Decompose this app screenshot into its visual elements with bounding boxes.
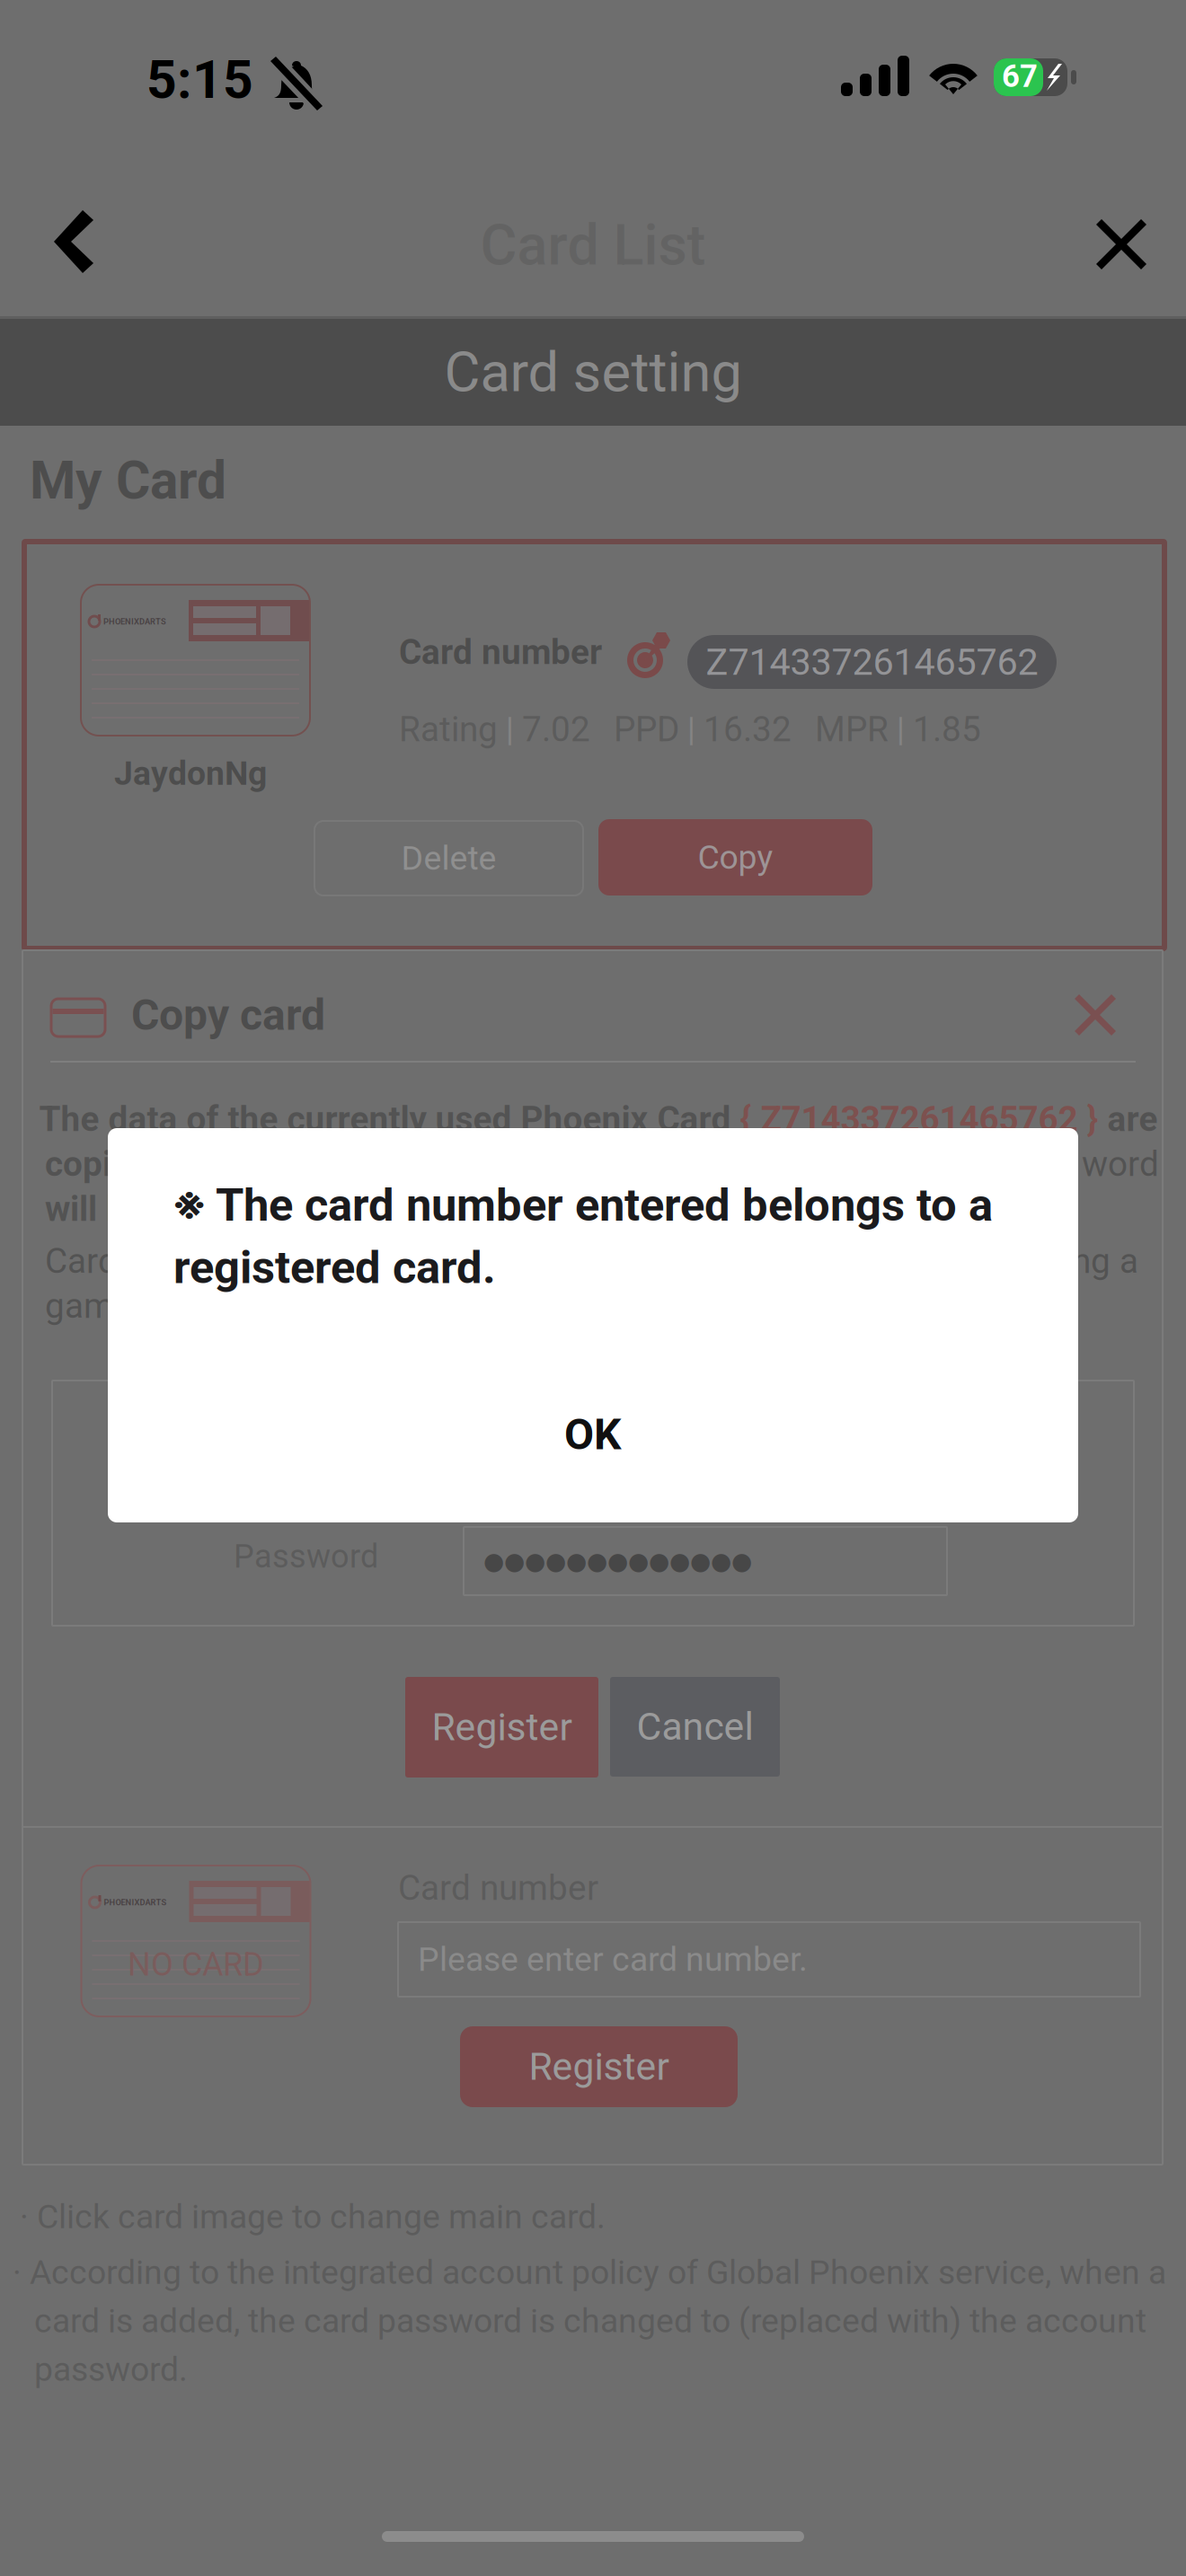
staticText: registered card. bbox=[173, 1241, 496, 1294]
staticText: Z714337261465762 bbox=[706, 640, 1038, 684]
staticText: 67 bbox=[1002, 58, 1038, 95]
button[interactable]: Close bbox=[1096, 219, 1146, 269]
staticText: My Card bbox=[30, 450, 226, 511]
staticText: PHOENIXDARTS bbox=[103, 617, 166, 626]
button[interactable]: Change main card bbox=[81, 585, 310, 736]
staticText: | bbox=[498, 710, 522, 748]
staticText: PHOENIXDARTS bbox=[104, 1897, 167, 1907]
staticText: Card number bbox=[398, 1868, 598, 1908]
staticText: copied to the new card, and the card pas… bbox=[45, 1144, 775, 1184]
staticText: Copy card bbox=[131, 990, 325, 1040]
staticText: ●●●●●●●●●●●●● bbox=[483, 1547, 752, 1575]
staticText: Card setting bbox=[444, 340, 742, 405]
button[interactable]: Cancel bbox=[610, 1677, 780, 1777]
button[interactable]: Register bbox=[405, 1677, 598, 1778]
staticText: Copy bbox=[698, 838, 773, 877]
button[interactable]: Back bbox=[54, 210, 93, 273]
staticText: Rating bbox=[399, 709, 498, 750]
button[interactable]: Copy bbox=[598, 819, 872, 895]
staticText: { Z714337261465762 } bbox=[740, 1099, 1098, 1139]
staticText: word bbox=[1082, 1144, 1159, 1184]
staticText: | bbox=[679, 710, 704, 748]
staticText: ※ The card number entered belongs to a bbox=[173, 1178, 993, 1232]
staticText: 1.85 bbox=[913, 709, 981, 750]
staticText: NO CARD bbox=[128, 1945, 264, 1983]
button[interactable]: Register bbox=[460, 2026, 738, 2107]
staticText: Password bbox=[234, 1538, 378, 1576]
staticText: Delete bbox=[401, 839, 496, 878]
staticText: Register bbox=[432, 1705, 572, 1750]
staticText: JaydonNg bbox=[114, 754, 267, 793]
staticText: card is added, the card password is chan… bbox=[34, 2301, 1146, 2340]
staticText: game. bbox=[45, 1286, 142, 1326]
staticText: 7.02 bbox=[522, 709, 590, 750]
staticText: OK bbox=[564, 1409, 622, 1460]
staticText: Cancel bbox=[637, 1704, 753, 1749]
staticText: Please enter card number. bbox=[418, 1940, 808, 1979]
button[interactable]: Close Copy card bbox=[1075, 994, 1116, 1036]
staticText: will be changed to the account password. bbox=[45, 1189, 694, 1229]
staticText: 5:15 bbox=[146, 49, 253, 111]
staticText: Register bbox=[529, 2044, 669, 2089]
staticText: Card data can not be copied to the card … bbox=[45, 1241, 1138, 1281]
staticText: Card number bbox=[399, 632, 602, 672]
staticText: PPD bbox=[614, 709, 679, 750]
staticText: · Click card image to change main card. bbox=[20, 2197, 606, 2236]
staticText: · According to the integrated account po… bbox=[13, 2253, 1166, 2292]
staticText: 16.32 bbox=[704, 709, 792, 750]
button[interactable]: OK bbox=[108, 1391, 1078, 1478]
staticText: Card List bbox=[480, 212, 706, 278]
staticText: The data of the currently used Phoenix C… bbox=[39, 1099, 740, 1139]
staticText: | bbox=[889, 710, 913, 748]
staticText: MPR bbox=[815, 709, 889, 750]
button[interactable]: Delete bbox=[314, 821, 583, 895]
staticText: password. bbox=[34, 2350, 188, 2389]
staticText: are bbox=[1098, 1099, 1158, 1139]
